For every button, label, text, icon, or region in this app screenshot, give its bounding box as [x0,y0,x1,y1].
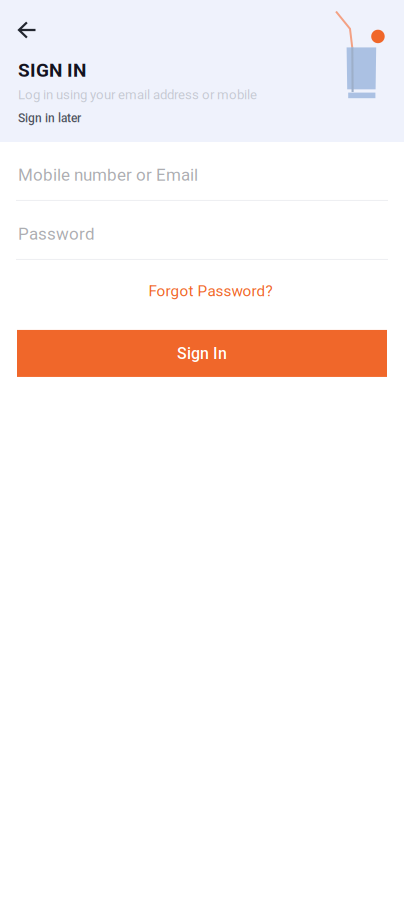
staticText: Mobile number or Email [18,165,198,185]
staticText: Log in using your email address or mobil… [18,87,257,102]
staticText: Password [18,224,95,244]
button[interactable]: Back [5,8,49,52]
staticText: Sign in later [18,111,81,125]
button[interactable]: Password [0,201,404,260]
button[interactable]: Sign In [17,330,387,377]
staticText: Sign In [177,344,227,363]
staticText: SIGN IN [18,59,86,81]
button[interactable]: Forgot Password? [117,274,286,308]
staticText: Forgot Password? [148,282,272,300]
button[interactable]: Sign in later [0,105,99,131]
button[interactable]: Mobile number or Email [0,142,404,201]
